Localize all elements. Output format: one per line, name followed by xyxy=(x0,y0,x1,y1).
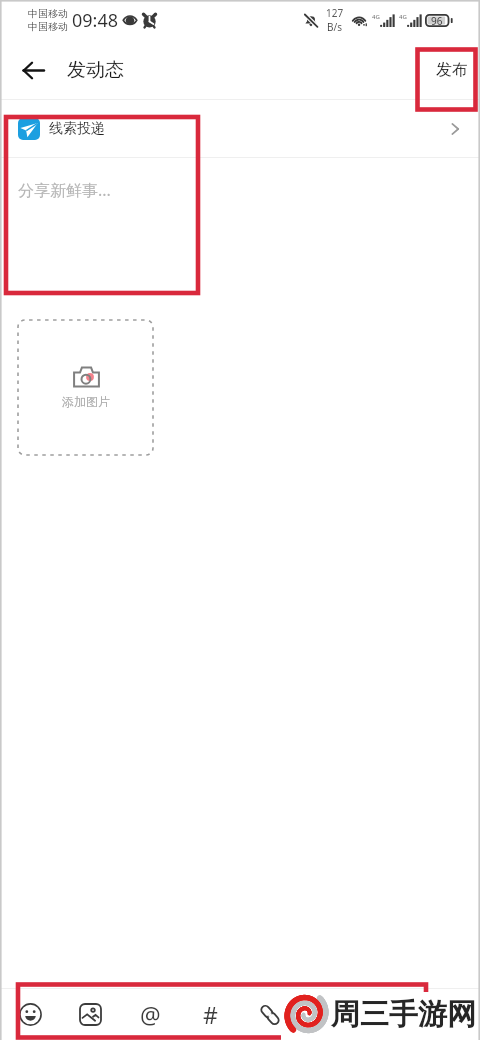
staticText: 09:48 xyxy=(72,8,119,33)
button[interactable]: 添加图片 xyxy=(18,320,153,455)
button[interactable]: 分享新鲜事... xyxy=(0,158,480,320)
staticText: 4G xyxy=(399,13,407,21)
staticText: 周三手游网 xyxy=(331,996,476,1033)
button[interactable]: 线索投递 xyxy=(0,100,480,157)
button[interactable]: 返回 xyxy=(10,47,56,93)
staticText: # xyxy=(203,999,218,1030)
staticText: 添加图片 xyxy=(62,394,110,409)
button[interactable]: 图片 xyxy=(60,989,120,1040)
button[interactable]: 提及 xyxy=(120,989,180,1040)
staticText: @ xyxy=(140,999,161,1030)
staticText: 线索投递 xyxy=(49,120,105,138)
button[interactable]: 发布 xyxy=(422,48,480,92)
staticText: 127 xyxy=(326,6,344,20)
staticText: 发动态 xyxy=(67,58,124,82)
staticText: 分享新鲜事... xyxy=(18,179,111,201)
staticText: 4G xyxy=(372,13,380,21)
button[interactable]: 话题 xyxy=(180,989,240,1040)
button[interactable]: 链接 xyxy=(240,989,300,1040)
staticText: 中国移动 xyxy=(28,7,68,20)
button[interactable]: 表情 xyxy=(0,989,60,1040)
staticText: B/s xyxy=(327,20,343,34)
staticText: 发布 xyxy=(436,60,468,80)
staticText: 96 xyxy=(431,14,443,27)
staticText: 中国移动 xyxy=(28,20,68,33)
